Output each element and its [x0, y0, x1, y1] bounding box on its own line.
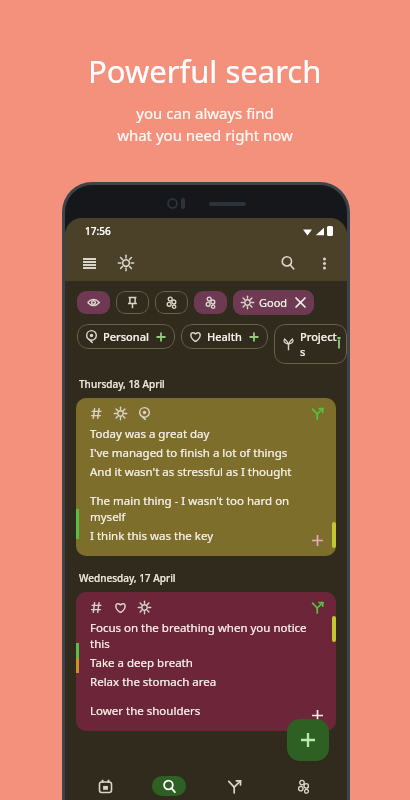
button[interactable]: Menu [77, 251, 102, 276]
button[interactable]: Filter [155, 291, 188, 314]
button[interactable]: Today was a great day [76, 398, 336, 556]
staticText: Wednesday, 17 April [79, 571, 176, 585]
button[interactable]: Filter [116, 291, 149, 314]
staticText: you can always find [136, 103, 274, 123]
staticText: And it wasn't as stressful as I thought [90, 464, 292, 480]
button[interactable]: Unsorted [273, 774, 332, 800]
staticText: Good [259, 295, 288, 310]
staticText: 17:56 [85, 224, 111, 238]
button[interactable]: Projects [274, 324, 347, 364]
staticText: Thursday, 18 April [79, 377, 165, 391]
staticText: I've managed to finish a lot of things [90, 445, 288, 461]
staticText: Lower the shoulders [90, 703, 201, 719]
button[interactable]: Search [144, 774, 194, 800]
staticText: I think this was the key [90, 528, 214, 544]
button[interactable]: Search [275, 250, 301, 276]
staticText: Projects [300, 329, 339, 359]
staticText: Health [207, 329, 242, 344]
staticText: Powerful search [88, 50, 322, 92]
button[interactable]: Personal [77, 324, 175, 349]
button[interactable]: Today [80, 774, 130, 800]
staticText: what you need right now [117, 125, 293, 145]
staticText: Personal [103, 329, 149, 344]
button[interactable]: Filter [194, 291, 227, 314]
staticText: Take a deep breath [90, 655, 193, 671]
staticText: Relax the stomach area [90, 674, 217, 690]
button[interactable]: Health [181, 324, 268, 349]
staticText: Focus on the breathing when you notice t… [90, 620, 324, 652]
staticText: Today was a great day [90, 426, 210, 442]
button[interactable]: Inbox [209, 774, 259, 800]
button[interactable]: Focus on the breathing when you notice t… [76, 592, 336, 731]
staticText: The main thing - I wasn't too hard on my… [90, 493, 311, 525]
button[interactable]: Add note [287, 719, 329, 761]
button[interactable]: Good [233, 290, 314, 315]
button[interactable]: Mood [113, 250, 139, 276]
button[interactable]: Filter [77, 291, 110, 314]
button[interactable]: More options [312, 251, 337, 276]
